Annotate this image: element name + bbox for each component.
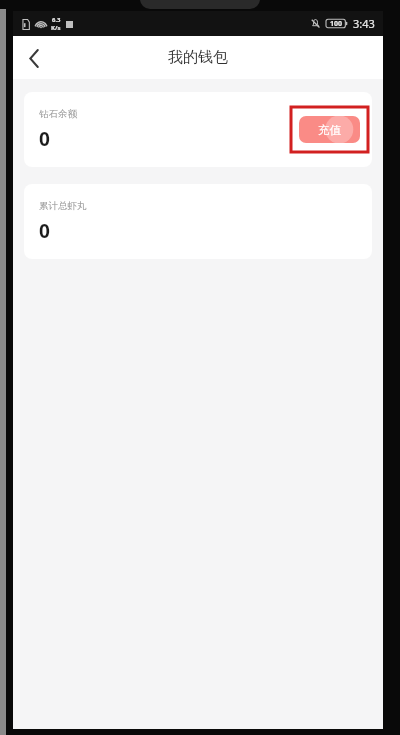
- staticText: 充值: [318, 123, 341, 137]
- staticText: 我的钱包: [168, 48, 228, 67]
- staticText: 100: [330, 19, 343, 29]
- button[interactable]: 钻石余额: [24, 92, 372, 167]
- staticText: 3:43: [353, 16, 375, 31]
- staticText: 6.3: [52, 16, 61, 24]
- staticText: 0: [39, 126, 50, 152]
- staticText: K/s: [51, 24, 61, 32]
- button[interactable]: Back: [13, 37, 55, 79]
- staticText: 0: [39, 218, 50, 244]
- staticText: 累计总虾丸: [39, 200, 87, 212]
- button[interactable]: 充值: [299, 116, 360, 143]
- staticText: 钻石余额: [39, 108, 77, 120]
- button[interactable]: 累计总虾丸: [24, 184, 372, 259]
